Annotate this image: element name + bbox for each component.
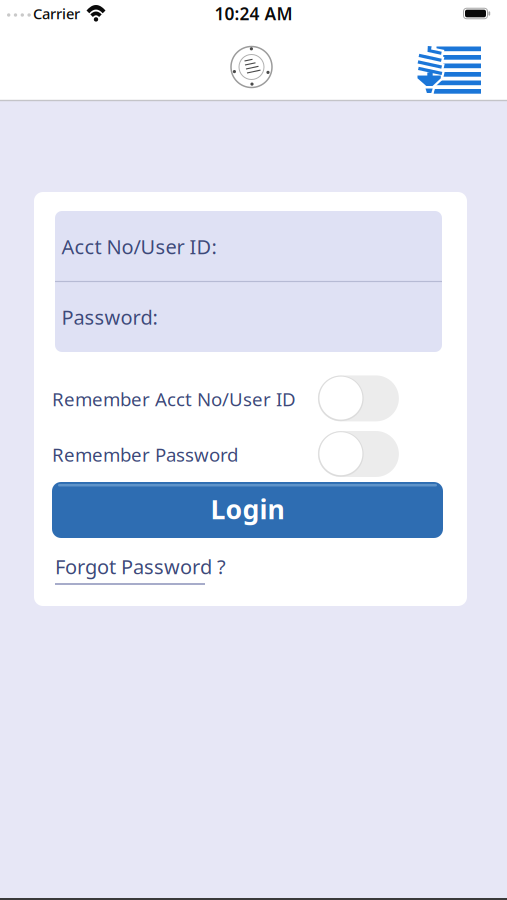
staticText: Remember Password (52, 442, 238, 467)
staticText: Remember Acct No/User ID (52, 387, 296, 411)
button[interactable]: Forgot Password ? (55, 553, 235, 585)
staticText: Forgot Password ? (55, 553, 226, 580)
staticText: 10:24 AM (214, 2, 292, 25)
button[interactable]: Remember Acct No/User ID (318, 375, 399, 421)
button[interactable]: Menu (413, 44, 481, 94)
staticText: Acct No/User ID: (61, 233, 216, 260)
staticText: Password: (61, 304, 157, 330)
staticText: Login (210, 491, 284, 527)
button[interactable]: Remember Password (318, 431, 399, 477)
button[interactable]: Login (52, 482, 443, 538)
staticText: Carrier (33, 4, 80, 23)
button[interactable]: Password: (55, 281, 442, 351)
button[interactable]: Acct No/User ID: (55, 211, 442, 281)
